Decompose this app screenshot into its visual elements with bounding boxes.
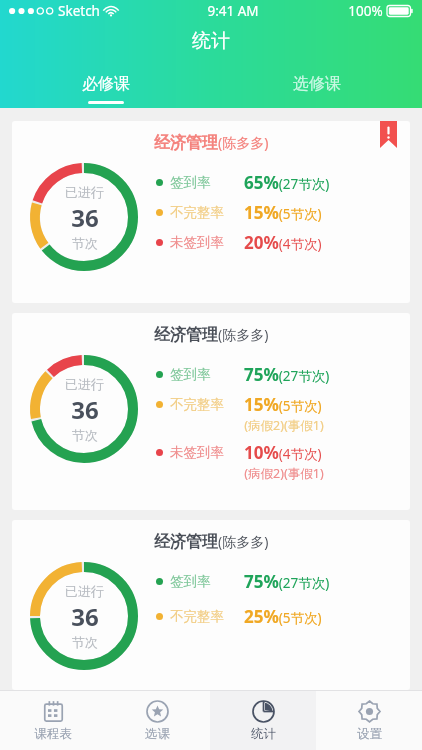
staticText: 不完整率 — [170, 204, 224, 221]
button[interactable]: 选课 — [105, 691, 210, 750]
staticText: 已进行 — [65, 583, 104, 599]
staticText: 签到率 — [170, 573, 211, 590]
staticText: 已进行 — [65, 376, 104, 392]
button[interactable]: 统计 — [210, 691, 316, 750]
staticText: 75%(27节次) — [244, 570, 330, 593]
staticText: 签到率 — [170, 174, 211, 191]
staticText: 不完整率 — [170, 396, 224, 413]
staticText: 36 — [71, 600, 99, 633]
staticText: 统计 — [251, 726, 276, 742]
button[interactable]: 经济管理(陈多多) — [12, 121, 410, 303]
staticText: Sketch — [58, 2, 100, 20]
staticText: 经济管理(陈多多) — [154, 133, 269, 153]
button[interactable]: 经济管理(陈多多) — [12, 313, 410, 510]
staticText: 75%(27节次) — [244, 363, 330, 386]
button[interactable]: 必修课 — [0, 74, 211, 108]
staticText: 65%(27节次) — [244, 171, 330, 194]
staticText: 签到率 — [170, 366, 211, 383]
staticText: 36 — [71, 393, 99, 426]
staticText: 统计 — [192, 29, 230, 53]
staticText: 10%(4节次) — [244, 441, 322, 464]
staticText: 36 — [71, 201, 99, 234]
button[interactable]: 设置 — [316, 691, 422, 750]
staticText: 9:41 AM — [207, 2, 259, 20]
staticText: 15%(5节次) — [244, 393, 322, 416]
staticText: 节次 — [72, 634, 98, 650]
staticText: 经济管理(陈多多) — [154, 532, 269, 552]
staticText: 选修课 — [293, 74, 341, 94]
staticText: 100% — [348, 2, 383, 20]
button[interactable]: 经济管理(陈多多) — [12, 520, 410, 690]
staticText: 未签到率 — [170, 444, 224, 461]
staticText: 不完整率 — [170, 608, 224, 625]
staticText: (病假2)(事假1) — [244, 417, 324, 434]
staticText: 经济管理(陈多多) — [154, 325, 269, 345]
staticText: 设置 — [357, 726, 382, 742]
staticText: 已进行 — [65, 184, 104, 200]
button[interactable]: 课程表 — [0, 691, 105, 750]
staticText: 必修课 — [82, 74, 130, 94]
staticText: 选课 — [145, 726, 170, 742]
staticText: 20%(4节次) — [244, 231, 322, 254]
staticText: 课程表 — [34, 726, 72, 742]
staticText: 25%(5节次) — [244, 605, 322, 628]
staticText: 节次 — [72, 235, 98, 251]
button[interactable]: 选修课 — [211, 74, 422, 108]
staticText: 节次 — [72, 427, 98, 443]
staticText: 未签到率 — [170, 234, 224, 251]
staticText: 15%(5节次) — [244, 201, 322, 224]
staticText: (病假2)(事假1) — [244, 465, 324, 482]
